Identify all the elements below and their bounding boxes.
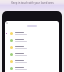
button[interactable] [27, 25, 37, 27]
button[interactable] [5, 37, 59, 44]
staticText: Keep in touch with your loved ones [11, 1, 54, 5]
button[interactable] [5, 51, 59, 58]
button[interactable]: Menu [6, 22, 8, 24]
button[interactable] [5, 30, 59, 37]
button[interactable] [5, 44, 59, 51]
button[interactable] [5, 65, 59, 72]
button[interactable] [5, 58, 59, 65]
